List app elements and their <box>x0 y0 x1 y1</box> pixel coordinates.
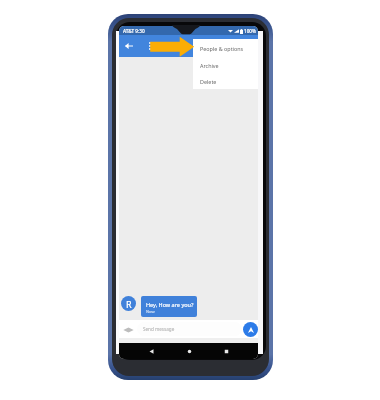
button[interactable]: Send message <box>137 322 242 336</box>
button[interactable]: More options <box>145 41 155 51</box>
staticText: Now <box>146 309 155 314</box>
button[interactable]: People & options <box>193 40 258 57</box>
staticText: 100% <box>244 28 256 34</box>
staticText: R <box>126 298 132 310</box>
staticText: Hey, How are you? <box>146 301 194 308</box>
staticText: Archive <box>200 62 219 69</box>
button[interactable]: Hey, How are you? <box>141 296 197 317</box>
button[interactable]: Archive <box>193 57 258 74</box>
staticText: Send message <box>143 326 175 332</box>
button[interactable]: Send <box>243 322 258 337</box>
button[interactable]: Recent apps <box>220 345 232 357</box>
button[interactable]: Back <box>145 345 157 357</box>
button[interactable]: Back <box>123 40 135 52</box>
button[interactable]: Home <box>183 345 195 357</box>
staticText: AT&T 9:30 <box>123 28 145 34</box>
button[interactable]: Camera <box>122 323 135 336</box>
button[interactable]: Delete <box>193 74 258 89</box>
staticText: People & options <box>200 45 244 52</box>
staticText: Delete <box>200 78 217 85</box>
